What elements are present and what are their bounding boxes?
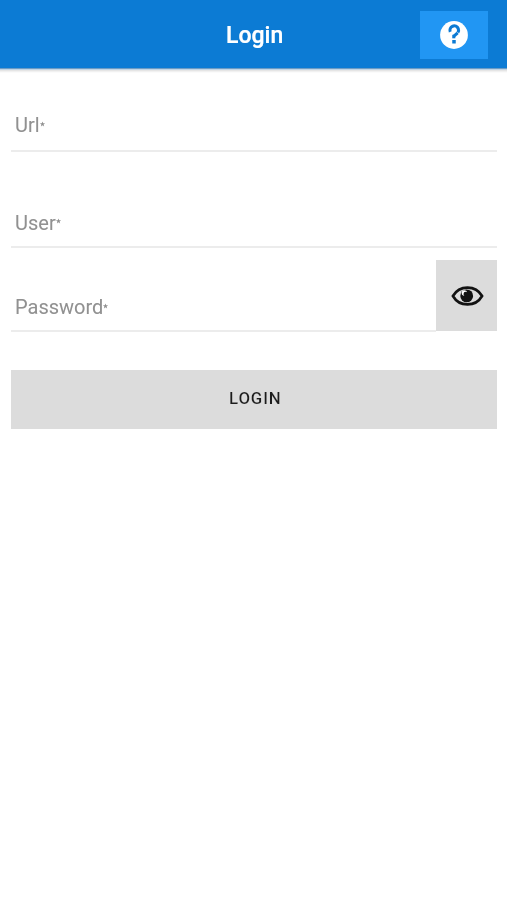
staticText: LOGIN — [229, 388, 282, 408]
button[interactable]: Password — [11, 288, 436, 332]
staticText: User — [15, 211, 56, 234]
staticText: Url — [15, 113, 40, 136]
button[interactable]: Url — [11, 108, 497, 152]
staticText: Password — [15, 295, 104, 318]
button[interactable]: LOGIN — [11, 370, 497, 429]
button[interactable]: User — [11, 204, 497, 248]
button[interactable]: Show password — [436, 260, 497, 331]
button[interactable]: Help — [420, 11, 488, 59]
staticText: Login — [226, 22, 284, 49]
